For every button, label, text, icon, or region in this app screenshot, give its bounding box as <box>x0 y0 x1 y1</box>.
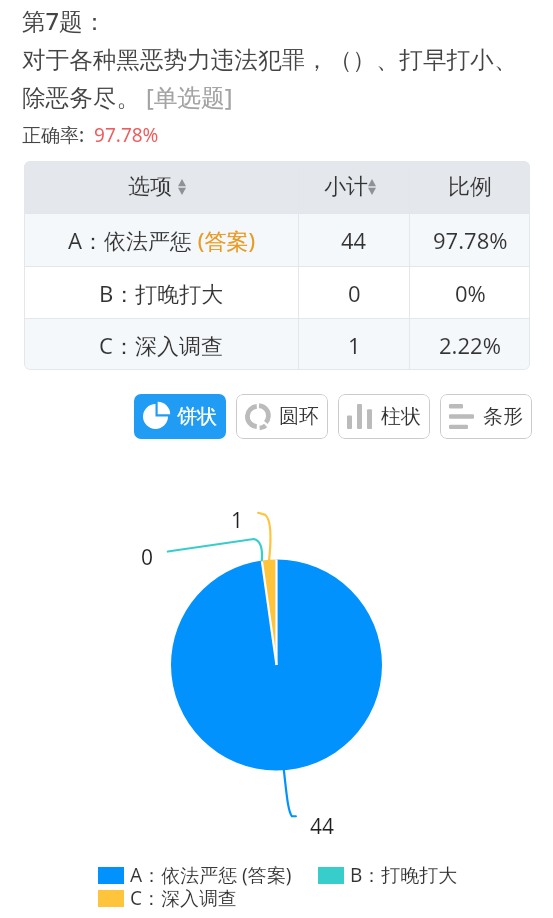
button[interactable]: 选项 <box>24 161 298 213</box>
staticText: 柱状 <box>381 404 421 429</box>
staticText: 0 <box>141 543 154 572</box>
button[interactable]: 44 <box>299 214 409 266</box>
staticText: 1 <box>348 330 361 360</box>
button[interactable]: 圆环 <box>236 394 328 439</box>
button[interactable]: 0% <box>410 267 530 318</box>
button[interactable]: 比例 <box>410 161 530 213</box>
staticText: 0 <box>348 278 361 308</box>
button[interactable]: C：深入调查 <box>98 885 238 911</box>
button[interactable]: 2.22% <box>410 319 530 370</box>
staticText: 2.22% <box>439 330 501 360</box>
staticText: 44 <box>310 812 335 841</box>
button[interactable]: A：依法严惩 (答案) <box>98 862 292 888</box>
staticText: 44 <box>341 225 367 255</box>
staticText: C：深入调查 <box>130 885 238 911</box>
button[interactable]: 0 <box>299 267 409 318</box>
staticText: 0% <box>455 278 486 308</box>
staticText: 饼状 <box>177 404 217 429</box>
staticText: B：打晚打大 <box>99 278 224 308</box>
staticText: A：依法严惩 (答案) <box>130 862 292 888</box>
staticText: 圆环 <box>279 404 319 429</box>
button[interactable]: C：深入调查 <box>24 319 298 370</box>
button[interactable]: 柱状 <box>338 394 430 439</box>
staticText: 1 <box>231 506 244 535</box>
staticText: 小计 <box>324 173 368 201</box>
button[interactable]: 97.78% <box>410 214 530 266</box>
button[interactable]: 小计 <box>299 161 409 213</box>
button[interactable]: A：依法严惩 (答案) <box>24 214 298 266</box>
button[interactable]: B：打晚打大 <box>318 862 458 888</box>
staticText: B：打晚打大 <box>350 862 458 888</box>
staticText: 正确率: 97.78% <box>22 122 159 148</box>
staticText: C：深入调查 <box>99 330 223 360</box>
staticText: 97.78% <box>433 225 508 255</box>
staticText: 选项 <box>128 173 172 201</box>
button[interactable]: 条形 <box>440 394 532 439</box>
staticText: 第7题： 对于各种黑恶势力违法犯罪，（）、打早打小、 除恶务尽。 [单选题] <box>22 5 518 113</box>
button[interactable]: B：打晚打大 <box>24 267 298 318</box>
staticText: 比例 <box>448 173 492 201</box>
staticText: 条形 <box>483 404 523 429</box>
button[interactable]: 1 <box>299 319 409 370</box>
button[interactable]: 饼状 <box>134 394 226 439</box>
staticText: A：依法严惩 (答案) <box>68 225 255 255</box>
